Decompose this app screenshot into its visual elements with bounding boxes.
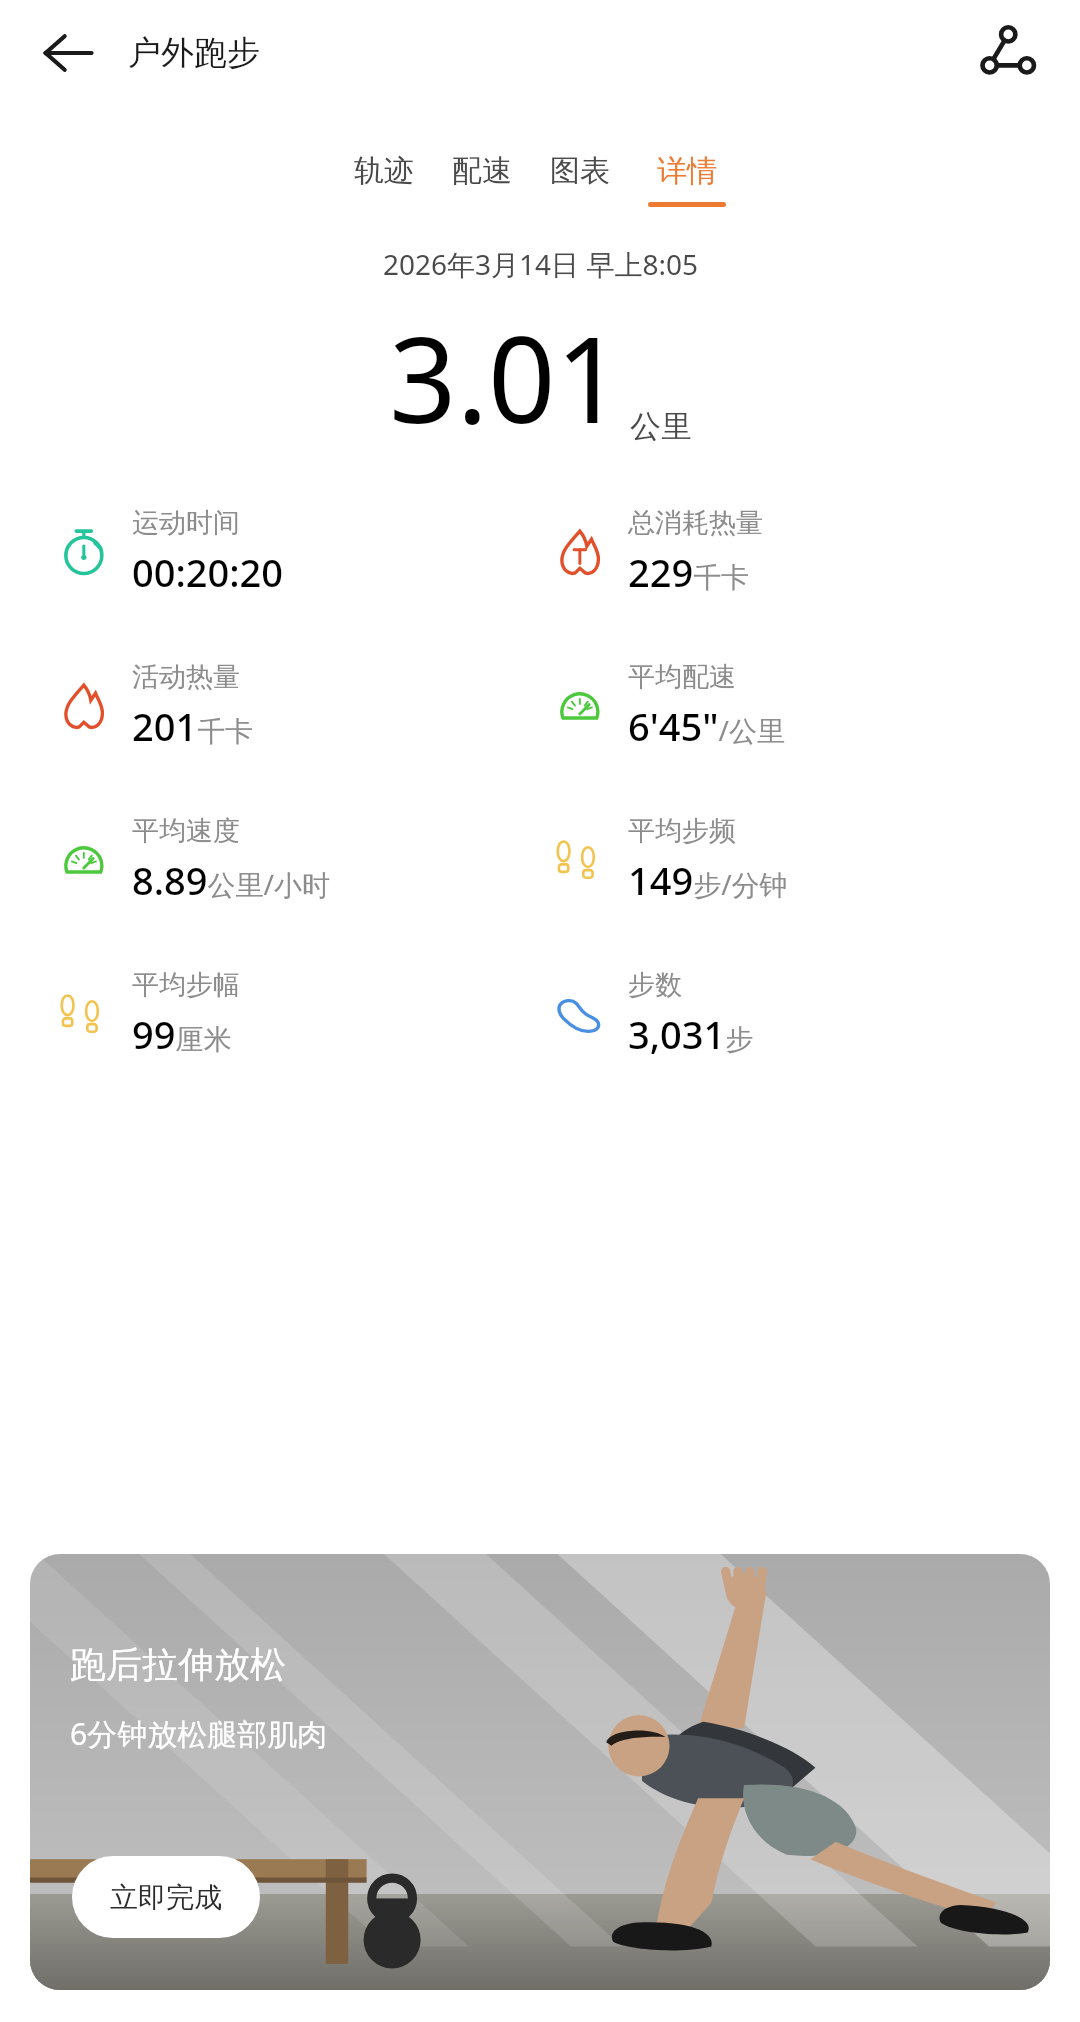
button[interactable]: 详情 [642,152,732,207]
staticText: 运动时间 [132,506,240,540]
staticText: 跑后拉伸放松 [70,1642,286,1687]
button[interactable]: Back [40,25,96,81]
staticText: 平均速度 [132,814,240,848]
staticText: 2026年3月14日 早上8:05 [383,245,698,283]
staticText: 00:20:20 [132,546,284,598]
staticText: 平均配速 [628,660,736,694]
staticText: 6分钟放松腿部肌肉 [70,1713,328,1754]
button[interactable]: 活动热量 [56,660,254,752]
staticText: 户外跑步 [128,32,260,74]
staticText: 平均步频 [628,814,736,848]
button[interactable]: 配速 [446,152,518,207]
staticText: 轨迹 [354,152,414,190]
button[interactable]: 平均配速 [552,660,785,752]
button[interactable]: 步数 [552,968,754,1060]
staticText: 平均步幅 [132,968,240,1002]
staticText: 6'45"/公里 [628,700,785,752]
staticText: 8.89公里/小时 [132,854,330,906]
button[interactable]: 总消耗热量 [552,506,763,598]
staticText: 立即完成 [110,1880,222,1915]
staticText: 总消耗热量 [628,506,763,540]
staticText: 149步/分钟 [628,854,788,906]
staticText: 活动热量 [132,660,240,694]
staticText: 229千卡 [628,546,750,598]
staticText: 详情 [657,152,717,190]
button[interactable]: 运动时间 [56,506,284,598]
staticText: 3.01 [389,297,624,458]
button[interactable]: 跑后拉伸放松 [30,1554,1050,1990]
staticText: 图表 [550,152,610,190]
staticText: 公里 [630,407,692,446]
button[interactable]: 平均步幅 [56,968,240,1060]
button[interactable]: 立即完成 [72,1856,260,1938]
button[interactable]: Share [976,22,1038,84]
staticText: 99厘米 [132,1008,232,1060]
staticText: 3,031步 [628,1008,754,1060]
button[interactable]: 轨迹 [348,152,420,207]
button[interactable]: 平均步频 [552,814,788,906]
staticText: 配速 [452,152,512,190]
button[interactable]: 图表 [544,152,616,207]
button[interactable]: 平均速度 [56,814,330,906]
staticText: 步数 [628,968,682,1002]
staticText: 201千卡 [132,700,254,752]
